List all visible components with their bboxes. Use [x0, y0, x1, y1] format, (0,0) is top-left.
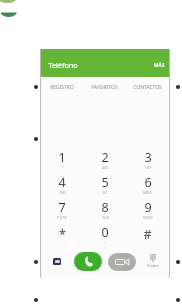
staticText: 3	[144, 149, 152, 166]
button[interactable]: 0	[83, 221, 126, 246]
staticText: ∞	[61, 165, 64, 169]
staticText: JKL	[102, 190, 108, 195]
button[interactable]: MÁS	[149, 55, 169, 74]
button[interactable]: FAVORITOS	[83, 77, 126, 95]
staticText: GHI	[59, 190, 66, 195]
staticText: 6	[144, 174, 152, 191]
staticText: ABC	[102, 165, 109, 170]
staticText: 4	[58, 174, 66, 191]
staticText: 8	[101, 199, 109, 216]
staticText: 2	[101, 149, 109, 166]
button[interactable]: 5	[83, 171, 126, 196]
button[interactable]: *	[41, 221, 83, 246]
button[interactable]: 3	[126, 146, 169, 171]
button[interactable]: 6	[126, 171, 169, 196]
button[interactable]: Ocultar	[141, 254, 165, 267]
staticText: MNO	[143, 190, 152, 195]
staticText: DEF	[145, 165, 152, 170]
button[interactable]: 9	[126, 196, 169, 221]
button[interactable]: Call	[74, 252, 102, 271]
button[interactable]: 1	[41, 146, 83, 171]
staticText: PQRS	[57, 215, 67, 220]
staticText: 9	[144, 199, 152, 216]
staticText: 0	[101, 224, 109, 241]
staticText: 5	[101, 174, 109, 191]
staticText: WXYZ	[143, 215, 153, 220]
staticText: TUV	[102, 215, 109, 220]
staticText: Ocultar	[147, 263, 159, 268]
staticText: Teléfono	[48, 60, 78, 70]
button[interactable]: SIM card	[53, 258, 61, 265]
button[interactable]: 7	[41, 196, 83, 221]
staticText: FAVORITOS	[91, 84, 118, 91]
staticText: #	[143, 226, 152, 243]
staticText: REGISTRO	[50, 84, 74, 91]
staticText: CONTACTOS	[133, 84, 162, 91]
button[interactable]: CONTACTOS	[126, 77, 169, 95]
staticText: *	[59, 226, 66, 243]
button[interactable]: 4	[41, 171, 83, 196]
button[interactable]: 8	[83, 196, 126, 221]
button[interactable]: REGISTRO	[41, 77, 83, 95]
staticText: 7	[58, 199, 66, 216]
button[interactable]: #	[126, 221, 169, 246]
button[interactable]: Video call	[108, 253, 136, 271]
button[interactable]: 2	[83, 146, 126, 171]
staticText: +	[104, 240, 107, 245]
staticText: MÁS	[153, 61, 165, 68]
staticText: 1	[58, 149, 66, 166]
